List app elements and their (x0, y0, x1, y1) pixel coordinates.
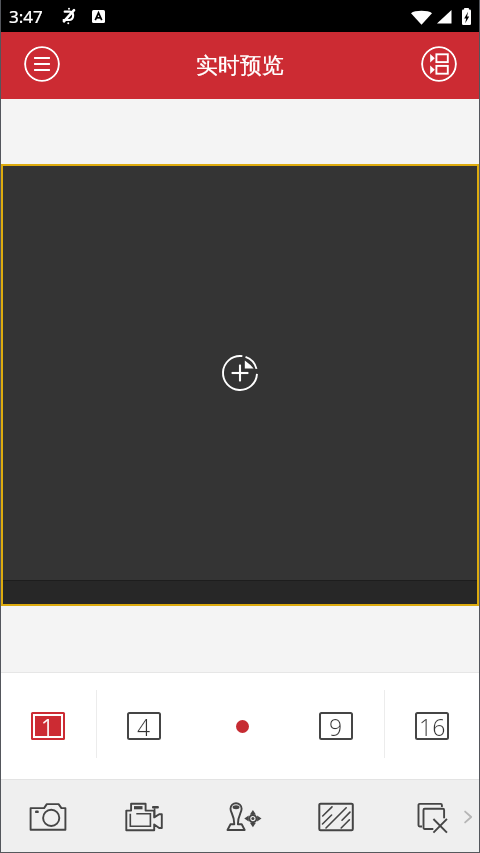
button[interactable]: 1 (0, 673, 96, 779)
button[interactable]: PTZ control (192, 780, 288, 853)
button[interactable]: 4 (96, 673, 192, 779)
staticText: 3:47 (9, 5, 43, 28)
button[interactable]: Close all (384, 780, 480, 853)
button[interactable]: 9 (288, 673, 384, 779)
staticText: 4 (137, 711, 151, 739)
button[interactable]: Add channel (218, 351, 262, 395)
button[interactable]: More layouts (192, 673, 288, 779)
staticText: 9 (329, 711, 343, 739)
button[interactable]: Record (96, 780, 192, 853)
button[interactable]: Capture (0, 780, 96, 853)
button[interactable]: Image settings (288, 780, 384, 853)
button[interactable]: Channel list (421, 46, 457, 82)
button[interactable]: 16 (384, 673, 480, 779)
staticText: 实时预览 (196, 52, 284, 80)
staticText: 16 (419, 711, 446, 739)
button[interactable]: Menu (24, 46, 60, 82)
staticText: 1 (41, 711, 55, 739)
